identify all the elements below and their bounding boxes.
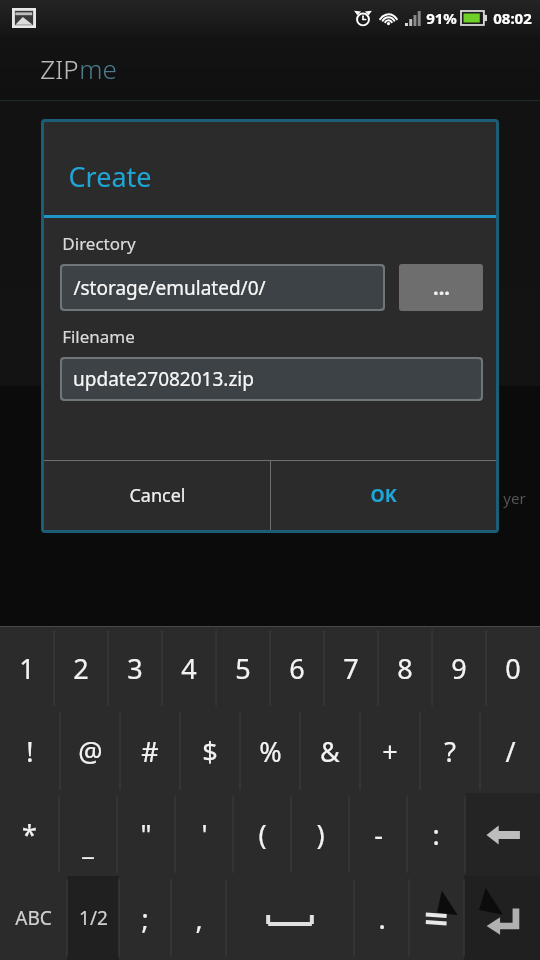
button[interactable]: /storage/emulated/0/ <box>62 266 383 309</box>
button[interactable]: $ <box>180 709 240 793</box>
button[interactable]: ABC <box>0 876 67 960</box>
staticText: , <box>195 900 203 937</box>
staticText: 5 <box>235 650 251 687</box>
button[interactable]: Enter <box>464 876 540 960</box>
button[interactable]: ( <box>233 793 291 876</box>
staticText: yer <box>503 488 526 508</box>
button[interactable]: ; <box>119 876 171 960</box>
staticText: ' <box>201 816 208 853</box>
button[interactable]: update27082013.zip <box>62 359 481 399</box>
staticText: me <box>79 51 117 86</box>
staticText: 3 <box>127 650 143 687</box>
staticText: ! <box>26 733 34 770</box>
staticText: $ <box>202 733 218 770</box>
button[interactable]: 1/2 <box>67 876 119 960</box>
button[interactable]: % <box>240 709 300 793</box>
button[interactable]: 9 <box>432 627 486 709</box>
staticText: Directory <box>62 232 136 255</box>
staticText: 6 <box>289 650 305 687</box>
staticText: & <box>320 733 340 770</box>
button[interactable]: . <box>354 876 409 960</box>
button[interactable] <box>180 286 360 386</box>
button[interactable]: 4 <box>162 627 216 709</box>
button[interactable]: 3 <box>108 627 162 709</box>
button[interactable]: * <box>0 793 59 876</box>
staticText: 8 <box>397 650 413 687</box>
button[interactable]: 7 <box>324 627 378 709</box>
button[interactable]: 0 <box>486 627 540 709</box>
staticText: % <box>259 733 282 770</box>
staticText: _ <box>82 827 94 862</box>
staticText: # <box>141 733 159 770</box>
staticText: " <box>140 816 152 853</box>
button[interactable]: : <box>407 793 465 876</box>
staticText: ? <box>444 733 456 770</box>
button[interactable]: , <box>171 876 226 960</box>
staticText: Create <box>68 158 152 195</box>
staticText: : <box>432 816 440 853</box>
staticText: ) <box>316 816 325 853</box>
button[interactable]: Settings <box>409 876 464 960</box>
button[interactable]: Browse <box>399 264 483 311</box>
staticText: 7 <box>343 650 359 687</box>
staticText: 91% <box>426 8 457 28</box>
staticText: 2 <box>73 650 89 687</box>
button[interactable]: 6 <box>270 627 324 709</box>
staticText: /storage/emulated/0/ <box>73 275 266 301</box>
button[interactable]: ) <box>291 793 349 876</box>
button[interactable]: ' <box>175 793 233 876</box>
button[interactable]: Space <box>226 876 354 960</box>
staticText: 1 <box>19 650 35 687</box>
button[interactable]: 8 <box>378 627 432 709</box>
button[interactable]: _ <box>59 793 117 876</box>
staticText: - <box>374 816 383 853</box>
staticText: + <box>382 733 398 770</box>
staticText: / <box>505 733 516 770</box>
staticText: update27082013.zip <box>73 366 254 392</box>
button[interactable]: 2 <box>54 627 108 709</box>
staticText: @ <box>78 733 103 770</box>
button[interactable]: " <box>117 793 175 876</box>
button[interactable]: OK <box>271 461 496 530</box>
staticText: 0 <box>505 650 521 687</box>
button[interactable]: / <box>480 709 540 793</box>
button[interactable]: + <box>360 709 420 793</box>
button[interactable]: ! <box>0 709 60 793</box>
staticText: 08:02 <box>493 8 532 28</box>
button[interactable]: Backspace <box>465 793 540 876</box>
button[interactable]: @ <box>60 709 120 793</box>
button[interactable]: # <box>120 709 180 793</box>
button[interactable]: Cancel <box>44 461 270 530</box>
staticText: ( <box>258 816 267 853</box>
button[interactable] <box>0 286 180 386</box>
staticText: 4 <box>181 650 197 687</box>
button[interactable]: ? <box>420 709 480 793</box>
staticText: 1/2 <box>79 905 108 931</box>
staticText: * <box>22 816 37 853</box>
button[interactable] <box>360 286 540 386</box>
staticText: 9 <box>451 650 467 687</box>
staticText: OK <box>370 483 397 508</box>
staticText: ... <box>433 274 450 301</box>
button[interactable]: - <box>349 793 407 876</box>
button[interactable]: 1 <box>0 627 54 709</box>
button[interactable]: & <box>300 709 360 793</box>
staticText: . <box>378 900 386 937</box>
staticText: ABC <box>15 905 52 931</box>
staticText: Cancel <box>129 483 186 508</box>
staticText: ZIP <box>40 51 79 86</box>
staticText: Filename <box>62 325 135 348</box>
button[interactable]: 5 <box>216 627 270 709</box>
staticText: ; <box>141 900 149 937</box>
